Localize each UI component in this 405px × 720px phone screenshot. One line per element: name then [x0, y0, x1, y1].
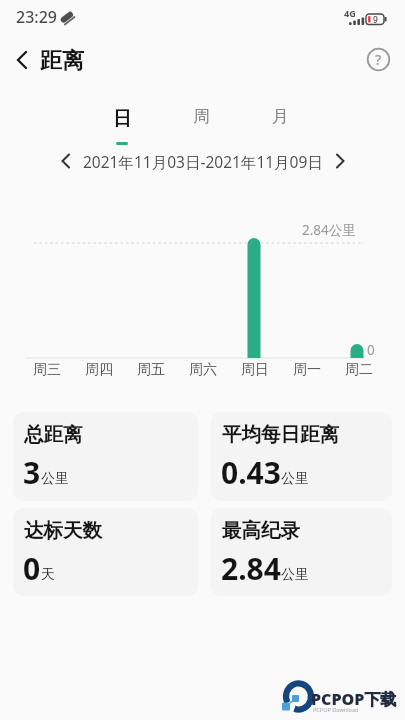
- staticText: 0.43: [221, 452, 281, 493]
- button[interactable]: 总距离: [13, 412, 198, 501]
- staticText: 周三: [33, 361, 61, 379]
- staticText: 周二: [345, 361, 373, 379]
- button[interactable]: [8, 46, 36, 74]
- staticText: 周六: [189, 361, 217, 379]
- button[interactable]: 月: [257, 98, 304, 146]
- staticText: 天: [41, 566, 55, 584]
- staticText: 距离: [40, 47, 84, 75]
- staticText: 9: [373, 14, 378, 26]
- staticText: 周四: [85, 361, 113, 379]
- staticText: 最高纪录: [222, 518, 300, 543]
- staticText: 公里: [281, 566, 309, 584]
- staticText: 周: [193, 106, 210, 127]
- staticText: 0: [23, 548, 41, 589]
- button[interactable]: [328, 146, 352, 176]
- staticText: ?: [375, 50, 382, 69]
- staticText: 公里: [41, 470, 69, 488]
- staticText: 2021年11月03日-2021年11月09日: [83, 151, 323, 172]
- staticText: 周五: [137, 361, 165, 379]
- staticText: 0: [367, 341, 375, 359]
- button[interactable]: 日: [98, 98, 145, 146]
- button[interactable]: ?: [366, 47, 391, 72]
- staticText: 达标天数: [24, 518, 102, 543]
- button[interactable]: 达标天数: [13, 508, 198, 596]
- staticText: 总距离: [24, 422, 83, 447]
- staticText: 公里: [281, 470, 309, 488]
- staticText: PCPOP下载: [311, 688, 397, 710]
- button[interactable]: 周: [178, 98, 225, 146]
- button[interactable]: [54, 146, 78, 176]
- staticText: 周一: [293, 361, 321, 379]
- staticText: 23:29: [16, 6, 57, 28]
- button[interactable]: 最高纪录: [211, 508, 392, 596]
- staticText: 周日: [241, 361, 269, 379]
- staticText: 4G: [344, 7, 356, 19]
- staticText: 2.84: [221, 548, 281, 589]
- staticText: PCPOP Download: [313, 706, 359, 713]
- staticText: 3: [23, 452, 41, 493]
- staticText: 平均每日距离: [222, 422, 339, 447]
- staticText: 日: [113, 107, 132, 130]
- button[interactable]: 平均每日距离: [211, 412, 392, 501]
- staticText: 2.84公里: [302, 221, 356, 239]
- staticText: 月: [272, 106, 289, 127]
